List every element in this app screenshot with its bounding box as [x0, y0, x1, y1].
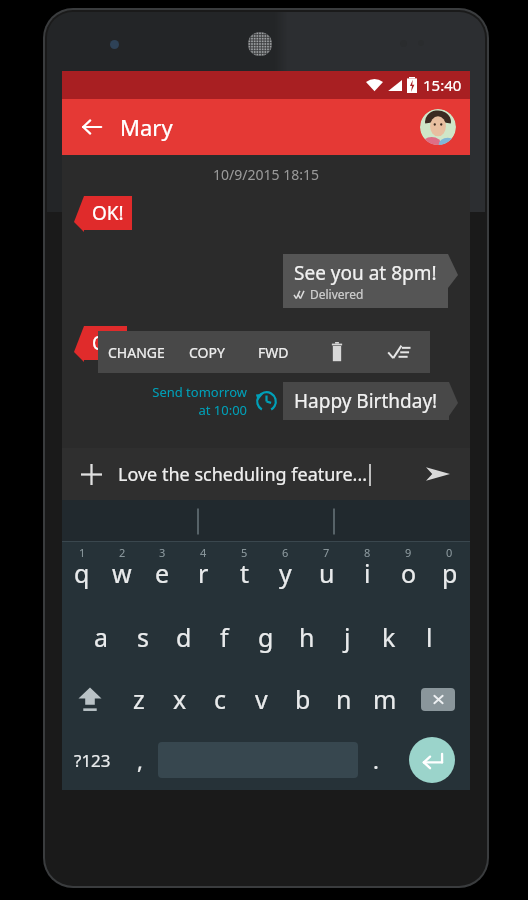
- staticText: e: [155, 556, 170, 590]
- button[interactable]: Enter: [394, 730, 470, 790]
- staticText: g: [258, 620, 274, 654]
- button[interactable]: Attach: [72, 455, 110, 493]
- staticText: z: [133, 682, 145, 716]
- staticText: 9: [405, 545, 412, 560]
- staticText: 1: [79, 545, 86, 560]
- button[interactable]: .: [358, 730, 394, 790]
- button[interactable]: 9: [388, 542, 429, 606]
- staticText: p: [442, 556, 458, 590]
- button[interactable]: Send: [418, 454, 458, 494]
- button[interactable]: h: [286, 606, 327, 668]
- button[interactable]: ?123: [62, 730, 122, 790]
- staticText: OK: [92, 330, 119, 356]
- button[interactable]: 8: [347, 542, 388, 606]
- staticText: 7: [323, 545, 330, 560]
- button[interactable]: FWD: [240, 331, 306, 373]
- staticText: f: [220, 620, 229, 654]
- staticText: FWD: [258, 343, 289, 362]
- staticText: COPY: [189, 343, 225, 362]
- button[interactable]: 4: [183, 542, 224, 606]
- button[interactable]: 0: [429, 542, 470, 606]
- staticText: h: [299, 620, 315, 654]
- button[interactable]: Mark read: [368, 331, 430, 373]
- staticText: l: [426, 620, 433, 654]
- button[interactable]: 5: [224, 542, 265, 606]
- staticText: ?123: [74, 749, 111, 772]
- staticText: 4: [200, 545, 207, 560]
- staticText: b: [295, 682, 311, 716]
- staticText: c: [214, 682, 227, 716]
- staticText: See you at 8pm!: [294, 260, 437, 286]
- button[interactable]: x: [159, 668, 200, 730]
- staticText: Delivered: [310, 286, 364, 302]
- button[interactable]: v: [241, 668, 282, 730]
- button[interactable]: Backspace: [405, 668, 470, 730]
- button[interactable]: d: [163, 606, 204, 668]
- staticText: w: [112, 556, 132, 590]
- button[interactable]: j: [327, 606, 368, 668]
- button[interactable]: Contact photo: [420, 109, 456, 145]
- button[interactable]: ,: [122, 730, 158, 790]
- button[interactable]: a: [81, 606, 122, 668]
- button[interactable]: OK!: [92, 200, 124, 226]
- button[interactable]: z: [118, 668, 159, 730]
- button[interactable]: OK: [92, 330, 119, 356]
- staticText: 3: [159, 545, 166, 560]
- staticText: 5: [241, 545, 248, 560]
- staticText: m: [373, 682, 397, 716]
- staticText: r: [198, 556, 209, 590]
- staticText: o: [401, 556, 417, 590]
- button[interactable]: Delete: [306, 331, 368, 373]
- staticText: CHANGE: [108, 343, 165, 362]
- button[interactable]: 6: [265, 542, 306, 606]
- staticText: u: [319, 556, 335, 590]
- staticText: 0: [446, 545, 453, 560]
- staticText: 8: [364, 545, 371, 560]
- staticText: t: [240, 556, 250, 590]
- button[interactable]: g: [245, 606, 286, 668]
- staticText: ,: [137, 745, 143, 775]
- button[interactable]: k: [368, 606, 409, 668]
- button[interactable]: m: [364, 668, 405, 730]
- button[interactable]: Love the scheduling feature...: [118, 462, 368, 487]
- button[interactable]: Back: [72, 107, 112, 147]
- button[interactable]: 1: [62, 542, 102, 606]
- staticText: j: [344, 620, 351, 654]
- button[interactable]: Mary: [120, 112, 173, 142]
- staticText: a: [94, 620, 109, 654]
- button[interactable]: 2: [102, 542, 142, 606]
- staticText: 10/9/2015 18:15: [62, 165, 470, 184]
- staticText: i: [364, 556, 371, 590]
- staticText: Happy Birthday!: [294, 388, 438, 414]
- staticText: q: [74, 556, 90, 590]
- button[interactable]: n: [323, 668, 364, 730]
- button[interactable]: l: [409, 606, 450, 668]
- staticText: 15:40: [423, 75, 462, 95]
- staticText: 2: [119, 545, 126, 560]
- staticText: v: [255, 682, 268, 716]
- staticText: n: [336, 682, 352, 716]
- staticText: .: [373, 745, 379, 775]
- staticText: x: [173, 682, 187, 716]
- staticText: y: [279, 556, 292, 590]
- staticText: k: [382, 620, 396, 654]
- button[interactable]: b: [282, 668, 323, 730]
- button[interactable]: 7: [306, 542, 347, 606]
- staticText: 6: [282, 545, 289, 560]
- button[interactable]: s: [122, 606, 163, 668]
- button[interactable]: 3: [142, 542, 183, 606]
- button[interactable]: Happy Birthday!: [294, 388, 438, 414]
- button[interactable]: c: [200, 668, 241, 730]
- button[interactable]: Shift: [62, 668, 118, 730]
- button[interactable]: COPY: [174, 331, 240, 373]
- button[interactable]: Scheduled: [253, 388, 279, 414]
- button[interactable]: CHANGE: [98, 331, 174, 373]
- staticText: Send tomorrow at 10:00: [152, 383, 247, 419]
- button[interactable]: f: [204, 606, 245, 668]
- staticText: d: [176, 620, 192, 654]
- button[interactable]: See you at 8pm!: [294, 260, 437, 302]
- staticText: OK!: [92, 200, 124, 226]
- staticText: s: [137, 620, 149, 654]
